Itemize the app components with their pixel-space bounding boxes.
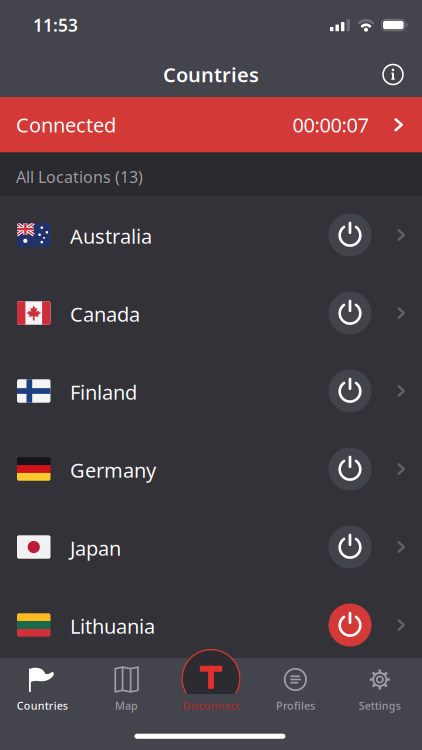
button[interactable]: Disconnect: [169, 667, 253, 710]
staticText: 00:00:07: [292, 111, 368, 138]
staticText: Countries: [17, 698, 68, 713]
button[interactable]: Connect: [328, 525, 371, 568]
button[interactable]: Connect: [328, 369, 371, 412]
button[interactable]: Info: [382, 55, 422, 85]
staticText: Canada: [70, 301, 140, 327]
staticText: Japan: [70, 535, 121, 561]
button[interactable]: Connected: [0, 97, 422, 152]
staticText: Germany: [70, 457, 156, 483]
button[interactable]: Connect: [328, 447, 371, 490]
staticText: Connected: [16, 111, 116, 138]
staticText: All Locations (13): [16, 166, 143, 187]
button[interactable]: Connect: [328, 291, 371, 334]
button[interactable]: Map: [84, 667, 169, 710]
button[interactable]: Profiles: [253, 667, 338, 710]
button[interactable]: Connect: [328, 213, 371, 256]
staticText: Disconnect: [182, 698, 239, 713]
button[interactable]: Germany: [0, 430, 422, 508]
button[interactable]: Japan: [0, 508, 422, 586]
staticText: 11:53: [33, 13, 78, 36]
button[interactable]: Disconnect: [181, 648, 241, 708]
staticText: Profiles: [276, 698, 315, 713]
staticText: Map: [115, 698, 138, 713]
button[interactable]: Disconnect: [328, 603, 371, 646]
staticText: Finland: [70, 379, 137, 405]
staticText: Lithuania: [70, 613, 155, 639]
button[interactable]: Finland: [0, 352, 422, 430]
button[interactable]: Settings: [338, 667, 422, 710]
button[interactable]: Australia: [0, 196, 422, 274]
staticText: Countries: [163, 61, 259, 88]
staticText: Settings: [359, 698, 401, 713]
button[interactable]: Canada: [0, 274, 422, 352]
button[interactable]: Countries: [0, 667, 84, 710]
staticText: Australia: [70, 223, 152, 249]
button[interactable]: Lithuania: [0, 586, 422, 664]
